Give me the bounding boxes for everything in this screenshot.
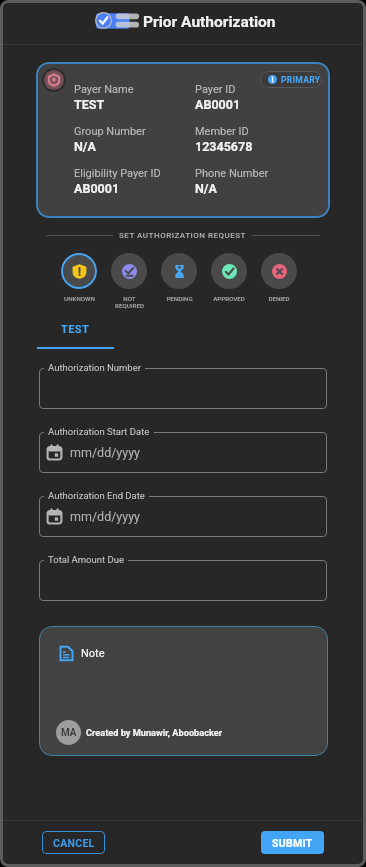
staticText: TEST bbox=[61, 323, 90, 336]
staticText: Prior Authorization bbox=[143, 13, 276, 31]
other: Prior authorization bbox=[95, 12, 140, 29]
staticText: NOT REQUIRED bbox=[115, 295, 144, 310]
button[interactable]: TEST bbox=[37, 323, 114, 349]
staticText: MA bbox=[61, 727, 77, 739]
button[interactable]: NOT REQUIRED bbox=[104, 253, 154, 310]
staticText: N/A bbox=[195, 181, 217, 196]
staticText: mm/dd/yyyy bbox=[70, 509, 140, 524]
staticText: mm/dd/yyyy bbox=[70, 445, 140, 460]
staticText: Eligibility Payer ID bbox=[74, 167, 161, 180]
staticText: TEST bbox=[74, 97, 105, 112]
button[interactable]: UNKNOWN bbox=[54, 253, 104, 302]
staticText: CANCEL bbox=[53, 837, 95, 849]
staticText: Authorization End Date bbox=[48, 490, 145, 501]
staticText: Total Amount Due bbox=[48, 554, 124, 565]
staticText: SET AUTHORIZATION REQUEST bbox=[119, 231, 246, 240]
staticText: PENDING bbox=[166, 295, 193, 302]
button[interactable]: PENDING bbox=[154, 253, 204, 302]
staticText: Phone Number bbox=[195, 167, 269, 180]
staticText: N/A bbox=[74, 139, 96, 154]
staticText: DENIED bbox=[268, 295, 290, 302]
staticText: Authorization Number bbox=[48, 362, 141, 373]
staticText: AB0001 bbox=[195, 97, 241, 112]
staticText: AB0001 bbox=[74, 181, 120, 196]
button[interactable]: APPROVED bbox=[204, 253, 254, 302]
button[interactable]: mm/dd/yyyy bbox=[39, 432, 327, 473]
staticText: 12345678 bbox=[195, 139, 253, 154]
staticText: Payer ID bbox=[195, 83, 236, 96]
button[interactable]: DENIED bbox=[254, 253, 304, 302]
staticText: Created by Munawir, Aboobacker bbox=[86, 727, 223, 738]
button[interactable]: Payer Name bbox=[36, 62, 330, 218]
button[interactable]: SUBMIT bbox=[261, 831, 324, 854]
staticText: UNKNOWN bbox=[64, 295, 95, 302]
button[interactable] bbox=[39, 560, 327, 601]
button[interactable]: CANCEL bbox=[42, 831, 105, 854]
staticText: Note bbox=[81, 647, 105, 660]
staticText: Payer Name bbox=[74, 83, 134, 96]
button[interactable]: Note bbox=[39, 626, 328, 756]
button[interactable]: PRIMARY bbox=[260, 71, 322, 88]
staticText: Member ID bbox=[195, 125, 249, 138]
staticText: Group Number bbox=[74, 125, 146, 138]
staticText: SUBMIT bbox=[272, 837, 313, 849]
staticText: PRIMARY bbox=[281, 75, 321, 85]
button[interactable] bbox=[39, 368, 327, 409]
button[interactable]: mm/dd/yyyy bbox=[39, 496, 327, 537]
staticText: APPROVED bbox=[213, 295, 245, 302]
staticText: Authorization Start Date bbox=[48, 426, 150, 437]
